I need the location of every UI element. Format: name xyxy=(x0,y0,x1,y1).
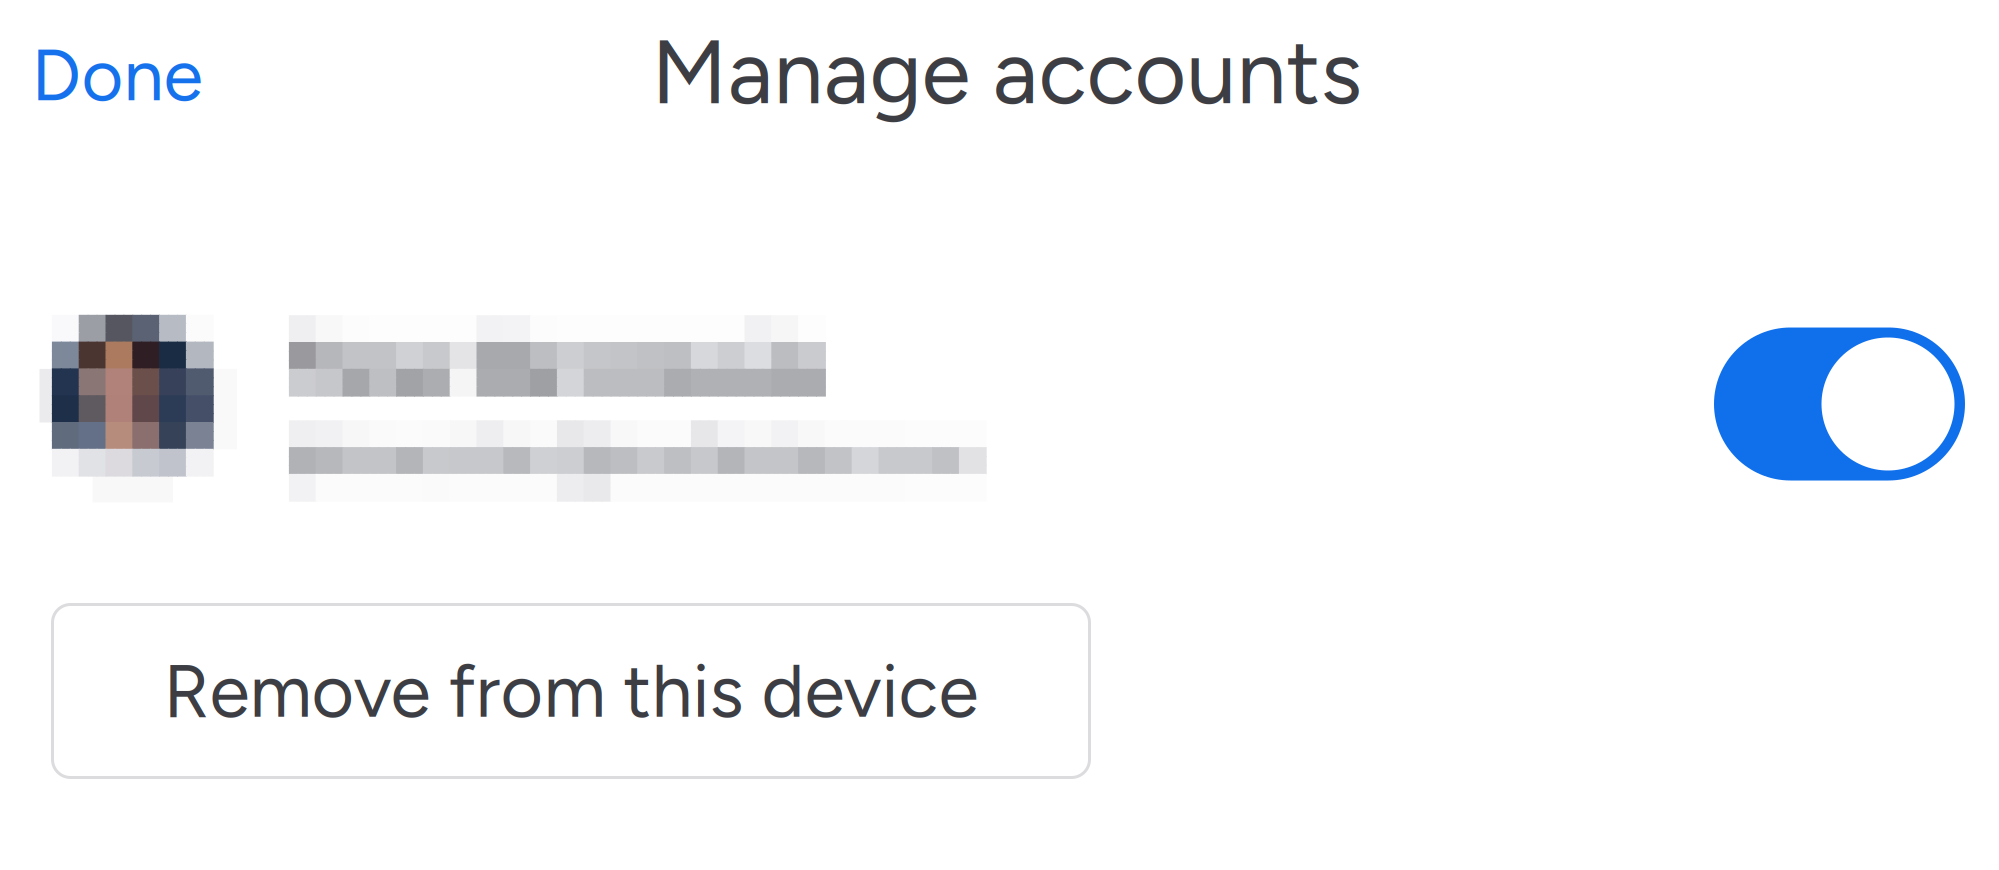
staticText: Manage accounts xyxy=(651,18,1362,126)
button[interactable]: Account enabled xyxy=(1714,327,1965,480)
staticText: Remove from this device xyxy=(163,647,978,735)
button[interactable]: Remove from this device xyxy=(52,604,1089,777)
staticText: Done xyxy=(31,32,202,118)
button[interactable]: Done xyxy=(15,14,218,136)
